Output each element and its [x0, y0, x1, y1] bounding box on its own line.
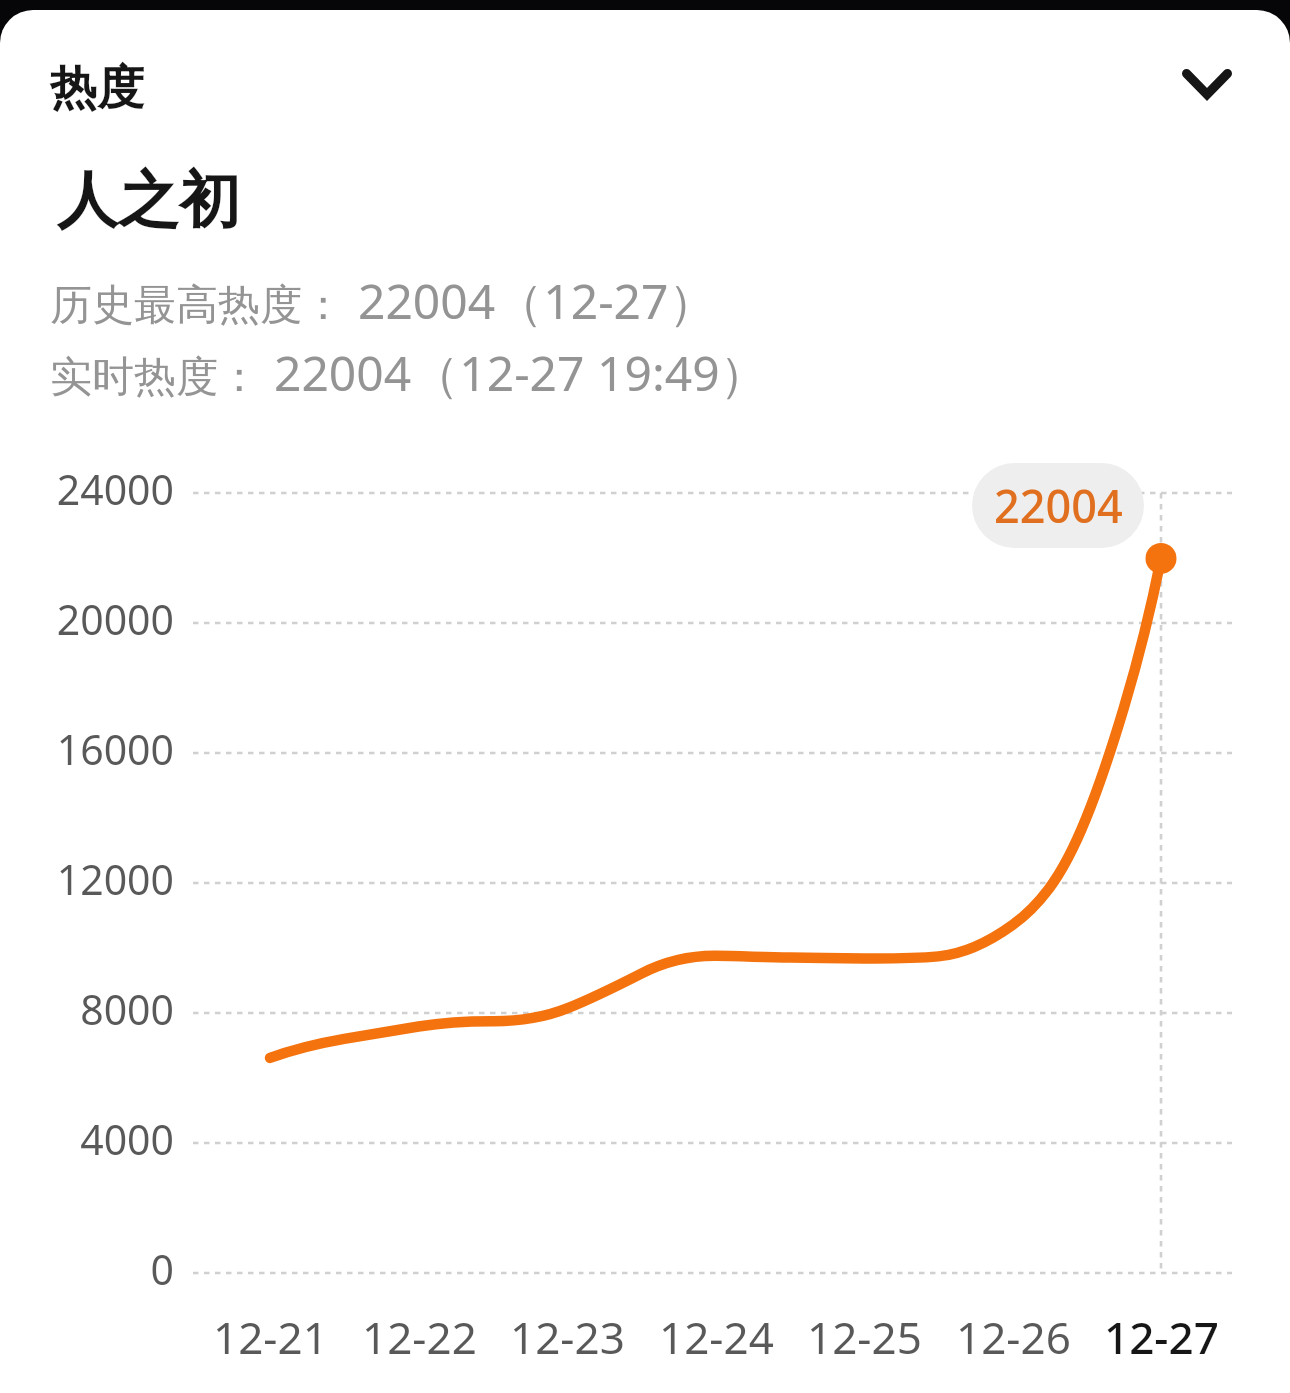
- staticText: 人之初: [57, 162, 240, 239]
- staticText: 12-26: [956, 1307, 1071, 1367]
- staticText: 16000: [56, 721, 174, 777]
- staticText: 历史最高热度： 22004（12-27）: [50, 268, 717, 334]
- button[interactable]: 热度: [50, 59, 144, 118]
- staticText: 8000: [80, 981, 174, 1037]
- staticText: 12000: [56, 851, 174, 907]
- staticText: 热度: [50, 59, 144, 118]
- staticText: 12-24: [659, 1307, 774, 1367]
- staticText: 12-22: [362, 1307, 477, 1367]
- staticText: 24000: [56, 461, 174, 517]
- staticText: 20000: [56, 591, 174, 647]
- staticText: 12-27: [1104, 1307, 1219, 1367]
- staticText: 22004: [994, 475, 1123, 536]
- staticText: 4000: [80, 1111, 174, 1167]
- staticText: 实时热度： 22004（12-27 19:49）: [50, 340, 768, 406]
- staticText: 12-25: [807, 1307, 922, 1367]
- staticText: 12-21: [213, 1307, 328, 1367]
- staticText: 0: [150, 1241, 174, 1297]
- button[interactable]: Collapse: [1155, 32, 1259, 136]
- staticText: 12-23: [510, 1307, 625, 1367]
